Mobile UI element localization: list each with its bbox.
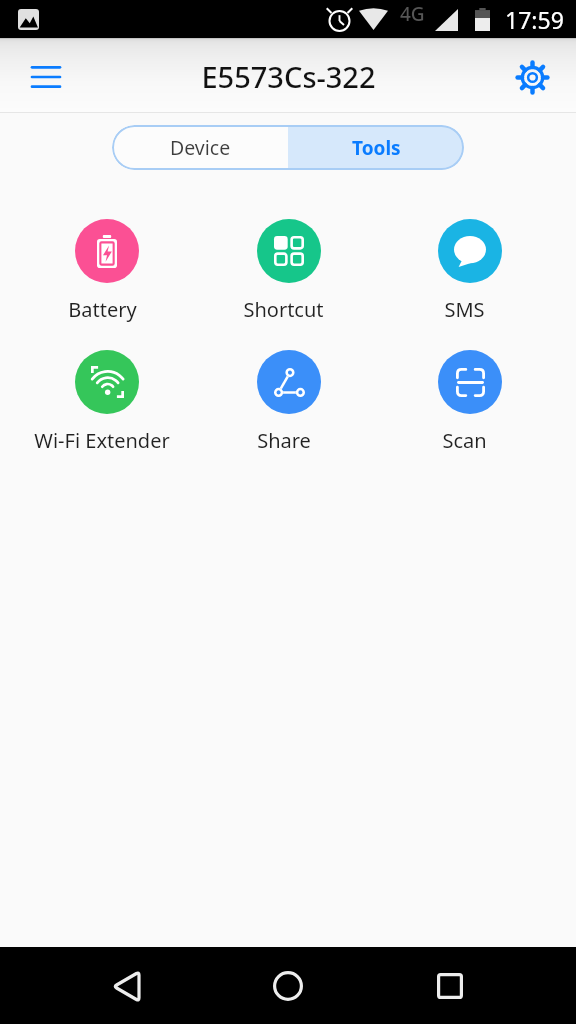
button[interactable]: SMS bbox=[379, 219, 560, 323]
button[interactable]: Recents bbox=[414, 950, 486, 1022]
button[interactable]: Tools bbox=[288, 125, 464, 170]
staticText: Battery bbox=[68, 296, 137, 323]
staticText: Shortcut bbox=[243, 296, 324, 323]
staticText: E5573Cs-322 bbox=[201, 57, 376, 96]
button[interactable]: Wi-Fi Extender bbox=[16, 350, 198, 454]
button[interactable]: Settings bbox=[508, 53, 556, 101]
staticText: Wi-Fi Extender bbox=[34, 427, 170, 454]
button[interactable]: Home bbox=[252, 950, 324, 1022]
staticText: SMS bbox=[444, 296, 485, 323]
button[interactable]: Battery bbox=[16, 219, 198, 323]
staticText: Device bbox=[170, 134, 231, 161]
staticText: Scan bbox=[442, 427, 487, 454]
staticText: 17:59 bbox=[505, 4, 564, 35]
button[interactable]: Scan bbox=[379, 350, 560, 454]
button[interactable]: Shortcut bbox=[198, 219, 379, 323]
staticText: Tools bbox=[352, 135, 401, 161]
button[interactable]: Device bbox=[112, 125, 288, 170]
staticText: 4G bbox=[400, 1, 425, 25]
button[interactable]: Share bbox=[198, 350, 379, 454]
button[interactable]: Back bbox=[90, 950, 162, 1022]
button[interactable]: Menu bbox=[22, 53, 70, 101]
staticText: Share bbox=[257, 427, 311, 454]
